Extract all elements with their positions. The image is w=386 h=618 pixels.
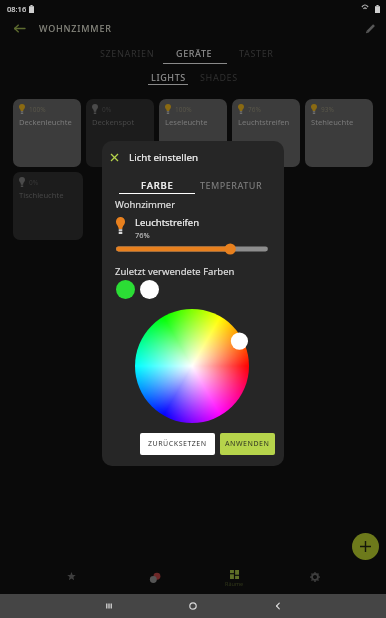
button[interactable]: SHADES [192,66,246,88]
staticText: TEMPERATUR [200,179,263,191]
button[interactable]: Hinzufügen [352,533,379,560]
button[interactable]: Schließen [107,149,198,165]
button[interactable]: 0% [86,99,154,167]
button[interactable]: Farbrad [135,309,249,423]
button[interactable]: Weiß [140,280,159,299]
button[interactable]: TEMPERATUR [189,177,273,193]
button[interactable]: 93% [305,99,373,167]
staticText: Leuchtstreifen [135,216,200,229]
staticText: 08:16 [7,4,27,14]
button[interactable]: ZURÜCKSETZEN [140,433,215,455]
button[interactable]: TASTER [232,42,281,64]
staticText: 76% [135,230,150,240]
button[interactable]: Favoriten [50,566,92,594]
button[interactable]: Startbildschirm [179,594,207,618]
staticText: 93% [321,105,334,114]
staticText: 0% [102,105,112,114]
staticText: Zuletzt verwendete Farben [115,265,235,278]
staticText: Deckenleuchte [19,117,72,127]
staticText: SHADES [200,71,238,83]
button[interactable]: LIGHTS [143,66,193,88]
button[interactable]: Helligkeit [116,242,268,256]
button[interactable]: Bearbeiten [360,18,380,38]
staticText: Stehleuchte [311,117,354,127]
button[interactable]: SZENARIEN [93,42,162,64]
staticText: Leseleuchte [165,117,208,127]
button[interactable]: Grün [116,280,135,299]
button[interactable]: 100% [13,99,81,167]
staticText: Räume [225,580,244,587]
staticText: 0% [29,178,39,187]
staticText: 76% [248,105,261,114]
staticText: WOHNZIMMER [39,22,112,34]
button[interactable]: 100% [159,99,227,167]
button[interactable]: Zurück [8,17,30,39]
staticText: SZENARIEN [100,47,155,59]
staticText: Tischleuchte [19,190,64,200]
button[interactable]: ANWENDEN [220,433,275,455]
button[interactable]: Letzte Apps [95,594,123,618]
staticText: Leuchtstreifen [238,117,290,127]
staticText: Licht einstellen [129,151,198,164]
button[interactable]: Räume [213,564,255,592]
staticText: FARBE [141,179,174,192]
staticText: LIGHTS [151,71,186,83]
button[interactable]: 0% [13,172,83,240]
staticText: ANWENDEN [225,439,270,449]
staticText: 100% [29,105,46,114]
button[interactable]: 76% [232,99,300,167]
staticText: 100% [175,105,192,114]
staticText: Deckenspot [92,117,135,127]
button[interactable]: Zurück [264,594,292,618]
staticText: Wohnzimmer [115,198,176,211]
button[interactable]: Szenen [134,566,176,594]
button[interactable]: Einstellungen [294,566,336,594]
staticText: ZURÜCKSETZEN [148,439,207,449]
button[interactable]: GERÄTE [169,42,220,64]
button[interactable]: FARBE [119,177,195,193]
staticText: TASTER [239,47,274,59]
staticText: GERÄTE [176,47,213,59]
